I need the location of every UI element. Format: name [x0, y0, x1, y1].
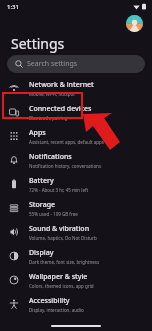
button[interactable]: Search settings	[7, 55, 145, 73]
button[interactable]: Wallpaper & style	[0, 268, 152, 292]
staticText: Bluetooth, pairing	[29, 115, 68, 121]
staticText: Search settings	[27, 59, 78, 69]
staticText: 72% - About 3 hr, 45 min left	[29, 187, 89, 193]
button[interactable]: Network & internet	[0, 76, 152, 100]
staticText: Assistant, recent apps, default apps	[29, 139, 104, 145]
staticText: Network & internet	[29, 80, 94, 90]
button[interactable]: Sound & vibration	[0, 220, 152, 244]
staticText: Dark theme, font size, brightness	[29, 259, 100, 265]
staticText: Notifications	[29, 152, 72, 162]
staticText: Display, interaction, audio	[29, 307, 84, 313]
staticText: Display	[29, 248, 54, 258]
staticText: Wallpaper & style	[29, 272, 88, 282]
button[interactable]: Storage	[0, 196, 152, 220]
staticText: Colors, themed icons, app grid	[29, 283, 94, 289]
staticText: Volume, haptics, Do Not Disturb	[29, 235, 97, 241]
button[interactable]: Battery	[0, 172, 152, 196]
staticText: Storage	[29, 200, 55, 210]
staticText: Notification history, conversations	[29, 163, 102, 169]
staticText: Battery	[29, 176, 54, 186]
button[interactable]: Apps	[0, 124, 152, 148]
staticText: 1:31	[7, 3, 19, 11]
staticText: Apps	[29, 128, 46, 138]
staticText: Accessibility	[29, 296, 70, 306]
staticText: Settings	[11, 34, 65, 53]
button[interactable]: Connected devices	[0, 100, 152, 124]
button[interactable]: Account	[126, 15, 143, 32]
staticText: Mobile, Wi-Fi, hotspot	[29, 91, 75, 97]
button[interactable]: Accessibility	[0, 292, 152, 316]
staticText: Sound & vibration	[29, 224, 90, 234]
button[interactable]: Display	[0, 244, 152, 268]
button[interactable]: Notifications	[0, 148, 152, 172]
staticText: Connected devices	[29, 104, 92, 114]
staticText: 55% used - 109 GB free	[29, 211, 78, 217]
